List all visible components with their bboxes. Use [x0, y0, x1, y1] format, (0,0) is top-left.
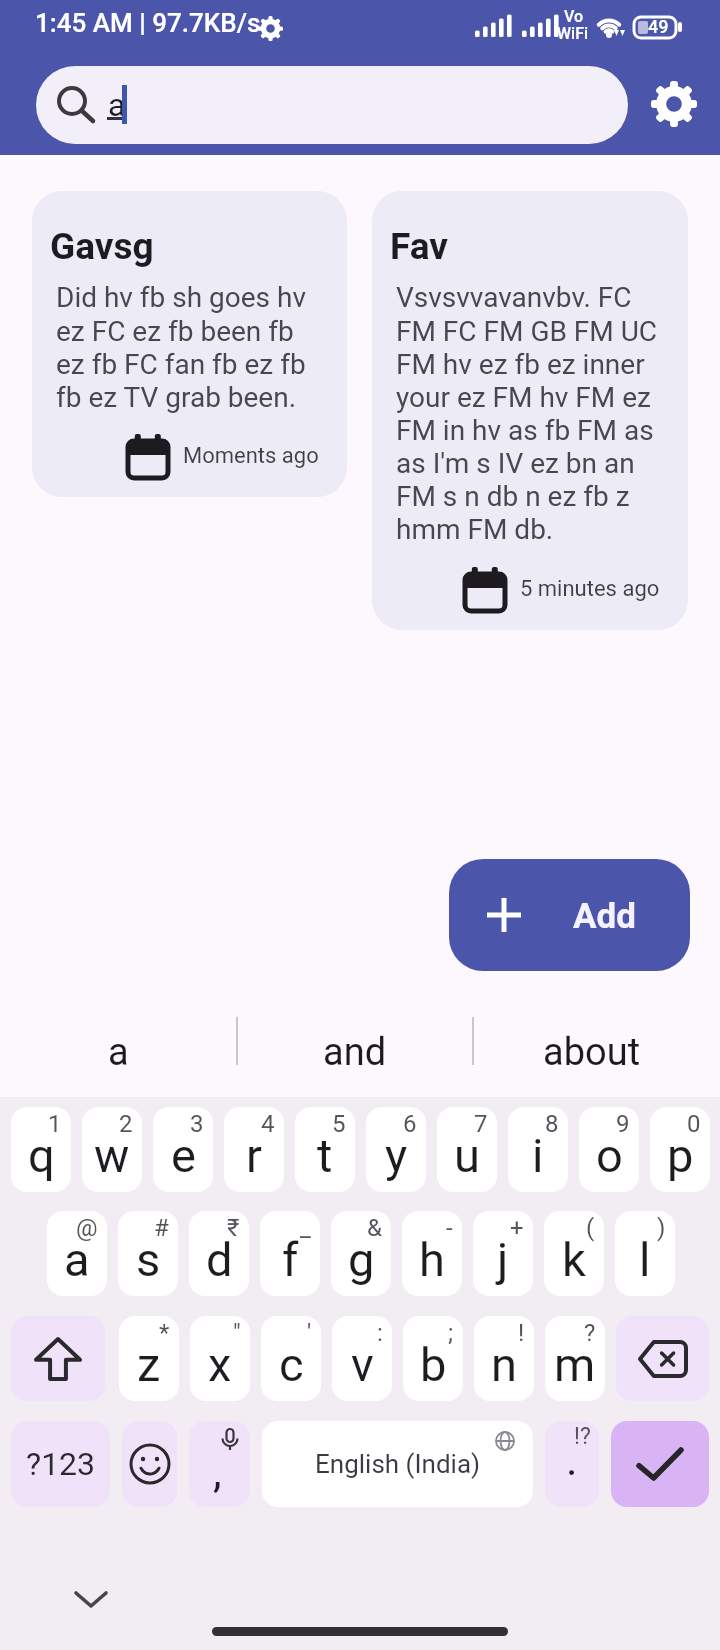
button[interactable]: u [437, 1107, 497, 1192]
button[interactable]: , [189, 1421, 250, 1507]
button[interactable]: ?123 [11, 1421, 110, 1507]
staticText: ! [518, 1319, 525, 1347]
staticText: l [639, 1232, 651, 1287]
button[interactable]: Gavsg [32, 191, 347, 497]
staticText: English (India) [315, 1449, 481, 1479]
staticText: . [566, 1434, 578, 1486]
staticText: 1:45 AM | 97.7KB/s [35, 8, 261, 38]
button[interactable]: r [224, 1107, 284, 1192]
staticText: o [596, 1128, 623, 1183]
staticText: _ [300, 1214, 311, 1242]
staticText: b [420, 1337, 447, 1392]
staticText: Gavsg [50, 225, 154, 268]
staticText: ) [657, 1214, 666, 1242]
staticText: c [279, 1337, 304, 1392]
button[interactable] [611, 1421, 709, 1507]
staticText: r [246, 1128, 262, 1183]
button[interactable] [76, 1589, 106, 1610]
button[interactable]: e [153, 1107, 213, 1192]
staticText: w [94, 1128, 130, 1183]
button[interactable] [646, 76, 702, 132]
button[interactable]: g [331, 1211, 391, 1296]
staticText: e [171, 1128, 196, 1183]
button[interactable]: n [474, 1316, 534, 1401]
staticText: ₹ [227, 1214, 240, 1242]
staticText: # [154, 1214, 169, 1242]
staticText: 1 [48, 1110, 62, 1138]
staticText: h [419, 1232, 445, 1287]
staticText: 6 [403, 1110, 417, 1138]
staticText: 9 [616, 1110, 630, 1138]
staticText: " [233, 1319, 241, 1347]
staticText: Did hv fb sh goes hv ez FC ez fb been fb… [56, 281, 306, 413]
staticText: 0 [687, 1110, 701, 1138]
button[interactable]: y [366, 1107, 426, 1192]
button[interactable]: a [36, 66, 628, 144]
staticText: g [348, 1232, 375, 1287]
button[interactable]: and [238, 1008, 472, 1097]
button[interactable]: m [545, 1316, 605, 1401]
button[interactable]: k [544, 1211, 604, 1296]
staticText: 8 [545, 1110, 559, 1138]
button[interactable]: a [47, 1211, 107, 1296]
staticText: Fav [390, 225, 448, 268]
staticText: d [206, 1232, 233, 1287]
staticText: Add [573, 896, 637, 937]
button[interactable]: t [295, 1107, 355, 1192]
staticText: ?123 [26, 1445, 96, 1483]
button[interactable]: b [403, 1316, 463, 1401]
button[interactable]: v [332, 1316, 392, 1401]
staticText: ; [448, 1319, 454, 1347]
button[interactable]: s [118, 1211, 178, 1296]
button[interactable]: j [473, 1211, 533, 1296]
button[interactable]: o [579, 1107, 639, 1192]
staticText: & [367, 1214, 382, 1242]
staticText: WiFi [557, 24, 589, 43]
staticText: a [64, 1232, 90, 1287]
staticText: + [510, 1214, 524, 1242]
button[interactable]: Add [449, 859, 690, 971]
staticText: ? [584, 1319, 596, 1347]
button[interactable]: about [474, 1008, 710, 1097]
staticText: u [454, 1128, 480, 1183]
button[interactable]: l [615, 1211, 675, 1296]
button[interactable]: q [11, 1107, 71, 1192]
staticText: s [136, 1232, 161, 1287]
staticText: 3 [190, 1110, 204, 1138]
staticText: 5 minutes ago [520, 576, 660, 602]
staticText: a [108, 86, 126, 124]
button[interactable] [616, 1316, 709, 1401]
button[interactable]: p [650, 1107, 710, 1192]
staticText: m [554, 1337, 596, 1392]
staticText: k [562, 1232, 586, 1287]
staticText: Moments ago [183, 443, 319, 469]
button[interactable]: h [402, 1211, 462, 1296]
staticText: i [532, 1128, 544, 1183]
button[interactable]: Fav [372, 191, 688, 630]
staticText: Vo [564, 7, 584, 26]
button[interactable]: !? [545, 1421, 599, 1507]
staticText: - [446, 1214, 453, 1242]
button[interactable]: English (India) [262, 1421, 533, 1507]
button[interactable]: z [119, 1316, 179, 1401]
button[interactable]: i [508, 1107, 568, 1192]
button[interactable]: a [0, 1008, 236, 1097]
staticText: , [213, 1446, 222, 1498]
button[interactable]: f [260, 1211, 320, 1296]
staticText: 7 [474, 1110, 488, 1138]
button[interactable]: x [190, 1316, 250, 1401]
button[interactable]: c [261, 1316, 321, 1401]
staticText: 49 [648, 16, 669, 37]
staticText: 2 [119, 1110, 133, 1138]
staticText: q [28, 1128, 55, 1183]
button[interactable]: w [82, 1107, 142, 1192]
staticText: j [497, 1232, 509, 1287]
staticText: and [323, 1030, 387, 1075]
button[interactable] [122, 1421, 177, 1507]
button[interactable] [11, 1316, 105, 1401]
staticText: ' [307, 1319, 312, 1347]
button[interactable]: d [189, 1211, 249, 1296]
staticText: ( [586, 1214, 595, 1242]
staticText: z [137, 1337, 161, 1392]
staticText: x [208, 1337, 232, 1392]
